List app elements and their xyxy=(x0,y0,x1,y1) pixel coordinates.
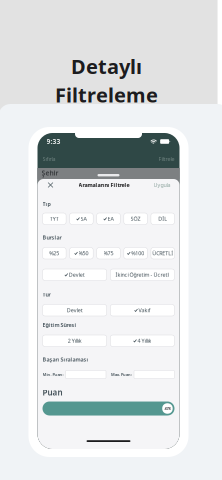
button[interactable]: TYT xyxy=(42,213,66,224)
button[interactable]: %25 xyxy=(42,247,66,259)
staticText: Devlet xyxy=(69,271,85,278)
staticText: Max. Puan: xyxy=(111,372,132,377)
staticText: Şehir xyxy=(41,168,58,177)
button[interactable]: İkinci Öğretim - Ücretli xyxy=(110,269,174,280)
staticText: %75 xyxy=(103,250,113,257)
staticText: TYT xyxy=(50,215,59,222)
staticText: Aramalarını Filtrele xyxy=(78,181,129,189)
staticText: Detaylı xyxy=(71,53,142,80)
button[interactable]: 4 Yıllık xyxy=(110,335,174,346)
staticText: %25 xyxy=(49,250,59,257)
staticText: Başarı Sıralaması xyxy=(42,356,88,363)
staticText: Uygula xyxy=(153,181,170,189)
staticText: 2 Yıllık xyxy=(68,337,82,344)
button[interactable]: 2 Yıllık xyxy=(42,335,107,346)
staticText: Devlet xyxy=(67,307,83,314)
button[interactable]: Filtrele xyxy=(158,155,174,163)
button[interactable]: Uygula xyxy=(153,181,170,189)
staticText: 9:33 xyxy=(46,137,60,146)
staticText: ÜCRETLİ xyxy=(152,250,173,257)
staticText: 4 Yıllık xyxy=(137,337,151,344)
staticText: Tıp xyxy=(42,200,50,208)
staticText: Vakıf xyxy=(138,307,150,314)
button[interactable]: EA xyxy=(97,213,120,224)
staticText: %100 xyxy=(131,250,144,257)
button[interactable]: Devlet xyxy=(42,269,107,280)
button[interactable]: Kapat xyxy=(46,181,54,189)
button[interactable]: SA xyxy=(70,213,93,224)
button[interactable]: Devlet xyxy=(42,304,107,316)
staticText: Eğitim Süresi xyxy=(42,321,76,329)
button[interactable]: SÖZ xyxy=(124,213,147,224)
button[interactable]: %75 xyxy=(97,247,120,259)
staticText: %50 xyxy=(78,250,88,257)
button[interactable]: %50 xyxy=(70,247,93,259)
staticText: Min. Puan: xyxy=(42,372,63,377)
staticText: DİL xyxy=(158,215,167,222)
button[interactable]: ÜCRETLİ xyxy=(151,247,174,259)
staticText: Tür xyxy=(42,291,50,298)
staticText: SÖZ xyxy=(131,215,141,222)
staticText: Puan xyxy=(42,387,62,398)
staticText: Filtreleme xyxy=(55,82,158,108)
staticText: EA xyxy=(108,215,114,222)
staticText: 478 xyxy=(164,406,170,411)
staticText: Filtrele xyxy=(158,155,174,163)
button[interactable]: DİL xyxy=(151,213,174,224)
staticText: SA xyxy=(80,215,86,222)
button[interactable]: Vakıf xyxy=(110,304,174,316)
staticText: Burslar xyxy=(42,234,61,241)
staticText: Sıfırla xyxy=(42,155,55,163)
staticText: İkinci Öğretim - Ücretli xyxy=(115,271,169,278)
button[interactable]: Sıfırla xyxy=(42,155,55,163)
button[interactable]: %100 xyxy=(124,247,147,259)
